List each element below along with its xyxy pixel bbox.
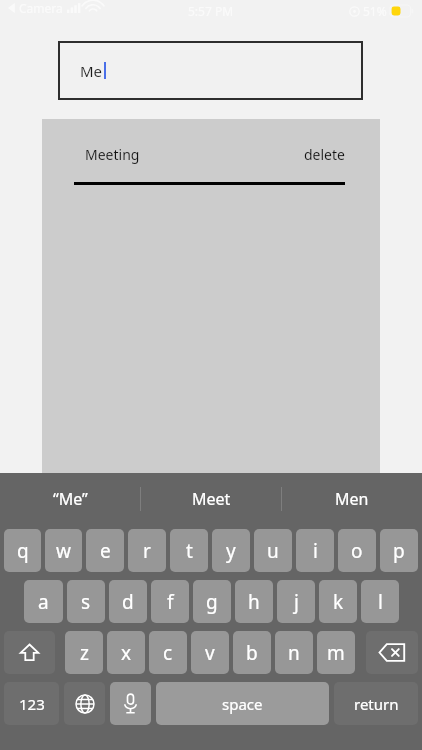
button[interactable]: Meeting <box>85 145 345 164</box>
button[interactable]: c <box>149 631 187 674</box>
staticText: d <box>122 589 134 615</box>
button[interactable]: a <box>24 580 63 623</box>
button[interactable]: o <box>338 529 376 572</box>
staticText: v <box>205 640 215 666</box>
staticText: y <box>226 538 236 564</box>
staticText: Meet <box>192 488 231 510</box>
button[interactable]: Me <box>58 41 363 100</box>
staticText: b <box>246 640 258 666</box>
staticText: l <box>378 589 383 615</box>
staticText: return <box>354 694 399 714</box>
button[interactable]: m <box>317 631 355 674</box>
staticText: k <box>333 589 344 615</box>
staticText: i <box>313 538 318 564</box>
button[interactable]: w <box>45 529 82 572</box>
staticText: j <box>294 589 299 615</box>
button[interactable]: s <box>67 580 105 623</box>
staticText: p <box>393 538 405 564</box>
button[interactable]: f <box>151 580 189 623</box>
button[interactable]: r <box>128 529 166 572</box>
button[interactable]: p <box>380 529 418 572</box>
staticText: m <box>327 640 345 666</box>
button[interactable]: v <box>191 631 229 674</box>
button[interactable]: k <box>319 580 357 623</box>
button[interactable]: u <box>254 529 292 572</box>
staticText: s <box>81 589 91 615</box>
button[interactable]: space <box>156 682 329 725</box>
button[interactable]: Meet <box>141 473 281 525</box>
button[interactable]: g <box>193 580 231 623</box>
button[interactable]: Men <box>282 473 422 525</box>
button[interactable]: return <box>334 682 418 725</box>
button[interactable]: Shift <box>4 631 55 674</box>
staticText: delete <box>304 145 345 164</box>
button[interactable]: Backspace <box>366 631 418 674</box>
button[interactable]: b <box>233 631 271 674</box>
staticText: z <box>80 640 89 666</box>
staticText: g <box>206 589 218 615</box>
button[interactable]: Switch keyboard language <box>64 682 105 725</box>
button[interactable]: j <box>277 580 315 623</box>
button[interactable]: Dictation <box>110 682 151 725</box>
staticText: o <box>351 538 363 564</box>
staticText: space <box>222 694 263 714</box>
button[interactable]: h <box>235 580 273 623</box>
staticText: Me <box>80 61 103 81</box>
button[interactable]: “Me” <box>0 473 140 525</box>
button[interactable]: n <box>275 631 313 674</box>
staticText: u <box>267 538 279 564</box>
button[interactable]: 123 <box>4 682 59 725</box>
staticText: h <box>248 589 260 615</box>
staticText: e <box>100 538 111 564</box>
button[interactable]: d <box>109 580 147 623</box>
button[interactable]: e <box>86 529 124 572</box>
staticText: f <box>167 589 174 615</box>
staticText: Men <box>335 488 369 510</box>
button[interactable]: y <box>212 529 250 572</box>
staticText: t <box>186 538 193 564</box>
button[interactable]: l <box>361 580 399 623</box>
staticText: n <box>288 640 300 666</box>
staticText: x <box>121 640 132 666</box>
staticText: 123 <box>19 694 45 714</box>
button[interactable]: z <box>65 631 103 674</box>
button[interactable]: x <box>107 631 145 674</box>
staticText: Meeting <box>85 145 140 164</box>
staticText: “Me” <box>53 488 88 510</box>
staticText: q <box>17 538 29 564</box>
button[interactable]: i <box>296 529 334 572</box>
staticText: c <box>163 640 173 666</box>
button[interactable]: t <box>170 529 208 572</box>
staticText: a <box>38 589 49 615</box>
staticText: r <box>143 538 151 564</box>
staticText: w <box>56 538 71 564</box>
button[interactable]: q <box>4 529 41 572</box>
